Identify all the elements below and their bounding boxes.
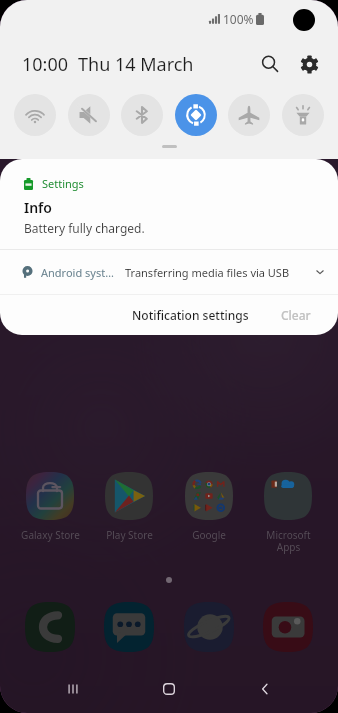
button[interactable]: Google — [172, 472, 246, 542]
button[interactable]: Android syst… — [0, 250, 338, 294]
button[interactable]: Phone — [13, 602, 87, 652]
button[interactable]: Back — [242, 666, 288, 712]
button[interactable]: Messages — [92, 602, 166, 652]
button[interactable]: Airplane mode — [228, 94, 270, 136]
button[interactable]: Wi-Fi — [14, 94, 56, 136]
button[interactable]: Search — [255, 49, 285, 79]
staticText: Clear — [281, 307, 311, 323]
staticText: Notification settings — [132, 307, 249, 323]
staticText: Play Store — [106, 528, 153, 542]
staticText: Battery fully charged. — [24, 220, 145, 236]
button[interactable]: Camera — [251, 602, 325, 652]
staticText: Google — [192, 528, 226, 542]
button[interactable]: Microsoft Apps — [251, 472, 325, 554]
button[interactable]: Recents — [50, 666, 96, 712]
button[interactable]: Settings — [0, 159, 338, 249]
button[interactable]: Flashlight — [282, 94, 324, 136]
button[interactable]: Settings — [294, 49, 324, 79]
button[interactable]: Notification settings — [123, 300, 258, 330]
button[interactable]: Galaxy Store — [13, 472, 87, 542]
staticText: Galaxy Store — [21, 528, 80, 542]
staticText: 10:00 — [22, 52, 69, 77]
button[interactable]: Home — [146, 666, 192, 712]
button[interactable]: Auto rotate — [175, 94, 217, 136]
button[interactable]: Internet — [172, 602, 246, 652]
button[interactable]: Sound off — [68, 94, 110, 136]
staticText: Transferring media files via USB — [125, 265, 290, 280]
staticText: Info — [24, 198, 52, 217]
button[interactable]: Bluetooth — [121, 94, 163, 136]
button[interactable]: Play Store — [92, 472, 166, 542]
staticText: Microsoft Apps — [266, 528, 311, 554]
button[interactable]: Clear — [272, 300, 320, 330]
staticText: Thu 14 March — [78, 52, 194, 77]
staticText: Settings — [42, 176, 84, 191]
staticText: 100% — [223, 11, 254, 27]
staticText: Android syst… — [41, 265, 114, 280]
